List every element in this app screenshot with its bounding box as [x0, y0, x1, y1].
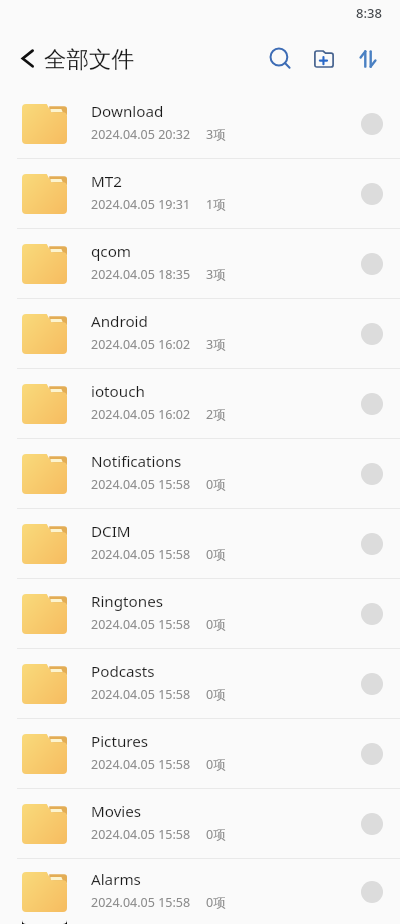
- button[interactable]: Select: [361, 183, 383, 205]
- staticText: 1项: [206, 196, 226, 213]
- button[interactable]: Ringtones: [0, 579, 400, 649]
- staticText: Alarms: [91, 869, 141, 890]
- button[interactable]: Search: [262, 41, 298, 77]
- staticText: Movies: [91, 801, 142, 822]
- staticText: 0项: [206, 756, 226, 773]
- staticText: 2024.04.05 15:58: [91, 686, 191, 703]
- button[interactable]: Select: [361, 881, 383, 903]
- staticText: 2024.04.05 15:58: [91, 476, 191, 493]
- button[interactable]: Podcasts: [0, 649, 400, 719]
- staticText: 2024.04.05 15:58: [91, 616, 191, 633]
- staticText: 2024.04.05 15:58: [91, 826, 191, 843]
- staticText: 全部文件: [44, 45, 134, 73]
- staticText: 3项: [206, 336, 226, 353]
- button[interactable]: Select: [361, 743, 383, 765]
- staticText: 0项: [206, 546, 226, 563]
- staticText: 2024.04.05 15:58: [91, 546, 191, 563]
- staticText: 2024.04.05 19:31: [91, 196, 191, 213]
- button[interactable]: Select: [361, 253, 383, 275]
- staticText: 2024.04.05 16:02: [91, 336, 191, 353]
- button[interactable]: Select: [361, 323, 383, 345]
- button[interactable]: Select: [361, 393, 383, 415]
- staticText: 2024.04.05 18:35: [91, 266, 191, 283]
- button[interactable]: iotouch: [0, 369, 400, 439]
- button[interactable]: Back: [10, 42, 44, 76]
- staticText: 0项: [206, 894, 226, 911]
- staticText: 2024.04.05 20:32: [91, 126, 191, 143]
- staticText: Download: [91, 101, 164, 122]
- button[interactable]: Select: [361, 113, 383, 135]
- staticText: 0项: [206, 616, 226, 633]
- button[interactable]: DCIM: [0, 509, 400, 579]
- staticText: qcom: [91, 241, 132, 262]
- staticText: 0项: [206, 476, 226, 493]
- button[interactable]: Select: [361, 813, 383, 835]
- staticText: 2024.04.05 15:58: [91, 756, 191, 773]
- button[interactable]: qcom: [0, 229, 400, 299]
- staticText: MT2: [91, 171, 122, 192]
- button[interactable]: Sort: [350, 41, 386, 77]
- button[interactable]: Android: [0, 299, 400, 369]
- button[interactable]: Movies: [0, 789, 400, 859]
- staticText: 2项: [206, 406, 226, 423]
- staticText: 0项: [206, 826, 226, 843]
- staticText: 8:38: [356, 4, 382, 22]
- staticText: Podcasts: [91, 661, 155, 682]
- staticText: iotouch: [91, 381, 145, 402]
- staticText: 3项: [206, 266, 226, 283]
- staticText: Notifications: [91, 451, 182, 472]
- button[interactable]: Download: [0, 89, 400, 159]
- staticText: Android: [91, 311, 148, 332]
- button[interactable]: Select: [361, 673, 383, 695]
- staticText: 2024.04.05 16:02: [91, 406, 191, 423]
- staticText: 3项: [206, 126, 226, 143]
- button[interactable]: Select: [361, 603, 383, 625]
- button[interactable]: New folder: [306, 41, 342, 77]
- staticText: DCIM: [91, 521, 131, 542]
- staticText: 2024.04.05 15:58: [91, 894, 191, 911]
- staticText: Pictures: [91, 731, 149, 752]
- staticText: 0项: [206, 686, 226, 703]
- button[interactable]: Notifications: [0, 439, 400, 509]
- staticText: Ringtones: [91, 591, 163, 612]
- button[interactable]: MT2: [0, 159, 400, 229]
- button[interactable]: Alarms: [0, 859, 400, 924]
- button[interactable]: Select: [361, 463, 383, 485]
- button[interactable]: Select: [361, 533, 383, 555]
- button[interactable]: Pictures: [0, 719, 400, 789]
